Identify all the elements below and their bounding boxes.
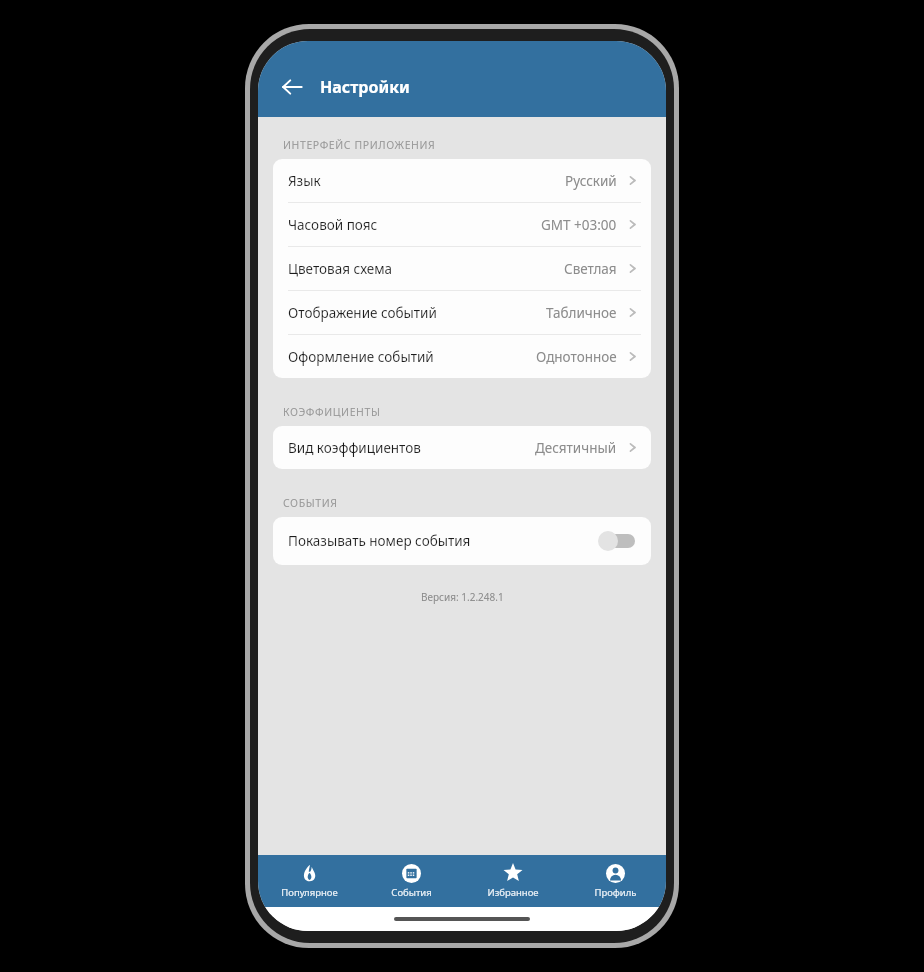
- staticText: Однотонное: [536, 348, 617, 366]
- button[interactable]: Показывать номер события: [273, 517, 651, 565]
- staticText: ИНТЕРФЕЙС ПРИЛОЖЕНИЯ: [283, 138, 436, 152]
- button[interactable]: Язык: [273, 159, 651, 203]
- button[interactable]: Популярное: [258, 855, 360, 907]
- staticText: Табличное: [546, 304, 617, 322]
- button[interactable]: Вид коэффициентов: [273, 426, 651, 469]
- staticText: Светлая: [564, 260, 617, 278]
- button[interactable]: Часовой пояс: [273, 203, 651, 247]
- button[interactable]: События: [360, 855, 462, 907]
- staticText: СОБЫТИЯ: [283, 496, 338, 510]
- staticText: Цветовая схема: [288, 260, 393, 278]
- button[interactable]: Цветовая схема: [273, 247, 651, 291]
- staticText: Популярное: [281, 886, 338, 899]
- staticText: Десятичный: [535, 439, 617, 457]
- staticText: Версия: 1.2.248.1: [421, 590, 504, 604]
- button[interactable]: Назад: [272, 67, 312, 107]
- button[interactable]: Избранное: [462, 855, 564, 907]
- staticText: Вид коэффициентов: [288, 439, 421, 457]
- button[interactable]: Оформление событий: [273, 335, 651, 378]
- button[interactable]: Отображение событий: [273, 291, 651, 335]
- staticText: Русский: [565, 172, 617, 190]
- staticText: Оформление событий: [288, 348, 434, 366]
- staticText: Настройки: [320, 76, 410, 98]
- staticText: GMT +03:00: [541, 216, 617, 234]
- staticText: Показывать номер события: [288, 532, 471, 550]
- staticText: Отображение событий: [288, 304, 437, 322]
- staticText: КОЭФФИЦИЕНТЫ: [283, 405, 381, 419]
- button[interactable]: Профиль: [564, 855, 666, 907]
- staticText: Часовой пояс: [288, 216, 378, 234]
- staticText: Язык: [288, 172, 321, 190]
- staticText: Избранное: [487, 886, 539, 899]
- staticText: События: [391, 886, 432, 899]
- staticText: Профиль: [594, 886, 637, 899]
